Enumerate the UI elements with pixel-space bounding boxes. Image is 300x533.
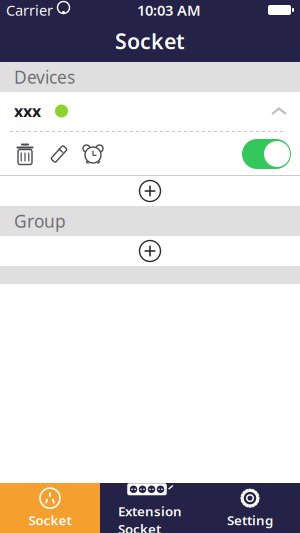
button[interactable]: Edit <box>42 134 76 174</box>
staticText: xxx <box>14 100 41 122</box>
button[interactable]: Power <box>242 139 291 169</box>
staticText: Extension Socket <box>118 502 182 533</box>
staticText: Devices <box>14 65 75 88</box>
button[interactable]: xxx <box>0 92 300 130</box>
button[interactable]: Add <box>0 176 300 206</box>
staticText: Carrier <box>6 0 53 20</box>
staticText: 10:03 AM <box>137 0 201 20</box>
staticText: Socket <box>115 27 185 55</box>
staticText: Setting <box>227 511 273 529</box>
button[interactable]: Extension Socket <box>100 483 200 533</box>
button[interactable]: Add <box>0 236 300 266</box>
button[interactable]: Timer <box>76 134 110 174</box>
button[interactable]: Setting <box>200 483 300 533</box>
button[interactable]: Socket <box>0 483 100 533</box>
staticText: Socket <box>28 511 71 529</box>
button[interactable]: Delete <box>8 134 42 174</box>
staticText: Group <box>14 209 66 232</box>
